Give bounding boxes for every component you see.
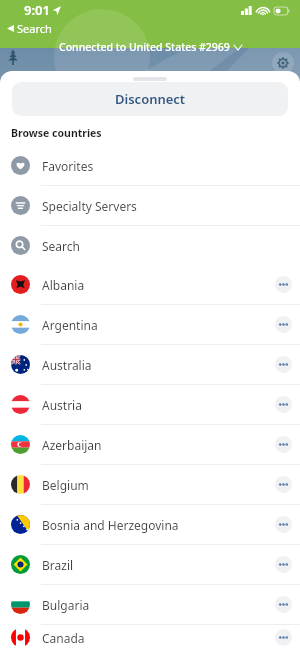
- staticText: Australia: [42, 357, 275, 373]
- staticText: Canada: [42, 630, 275, 646]
- staticText: Brazil: [42, 557, 275, 573]
- button[interactable]: More options for Australia: [275, 356, 292, 373]
- button[interactable]: Canada: [0, 625, 300, 650]
- staticText: Bosnia and Herzegovina: [42, 517, 275, 533]
- button[interactable]: More options for Azerbaijan: [275, 436, 292, 453]
- staticText: 9:01: [24, 1, 50, 19]
- button[interactable]: More options for Albania: [275, 276, 292, 293]
- button[interactable]: Search: [5, 20, 54, 37]
- button[interactable]: Connected to United States #2969: [0, 40, 300, 54]
- button[interactable]: More options for Argentina: [275, 316, 292, 333]
- button[interactable]: More options for Canada: [275, 629, 292, 646]
- staticText: Albania: [42, 277, 275, 293]
- button[interactable]: Disconnect: [12, 82, 288, 116]
- staticText: Belgium: [42, 477, 275, 493]
- staticText: Azerbaijan: [42, 437, 275, 453]
- staticText: Connected to United States #2969: [59, 40, 230, 54]
- button[interactable]: Specialty Servers: [0, 186, 300, 226]
- staticText: Search: [42, 238, 80, 254]
- button[interactable]: Austria: [0, 385, 300, 425]
- button[interactable]: Australia: [0, 345, 300, 385]
- button[interactable]: More options for Belgium: [275, 476, 292, 493]
- button[interactable]: Argentina: [0, 305, 300, 345]
- button[interactable]: More options for Brazil: [275, 556, 292, 573]
- button[interactable]: More options for Bulgaria: [275, 596, 292, 613]
- staticText: Browse countries: [11, 126, 102, 140]
- button[interactable]: More options for Austria: [275, 396, 292, 413]
- button[interactable]: Albania: [0, 265, 300, 305]
- button[interactable]: Settings: [272, 52, 294, 74]
- button[interactable]: Brazil: [0, 545, 300, 585]
- button[interactable]: Favorites: [0, 146, 300, 186]
- staticText: Austria: [42, 397, 275, 413]
- staticText: Argentina: [42, 317, 275, 333]
- staticText: Favorites: [42, 158, 94, 174]
- button[interactable]: Bulgaria: [0, 585, 300, 625]
- staticText: Disconnect: [115, 90, 186, 108]
- button[interactable]: Azerbaijan: [0, 425, 300, 465]
- staticText: Specialty Servers: [42, 198, 137, 214]
- staticText: Bulgaria: [42, 597, 275, 613]
- button[interactable]: Belgium: [0, 465, 300, 505]
- button[interactable]: Bosnia and Herzegovina: [0, 505, 300, 545]
- button[interactable]: More options for Bosnia and Herzegovina: [275, 516, 292, 533]
- button[interactable]: Search: [0, 226, 300, 265]
- staticText: Search: [17, 21, 52, 36]
